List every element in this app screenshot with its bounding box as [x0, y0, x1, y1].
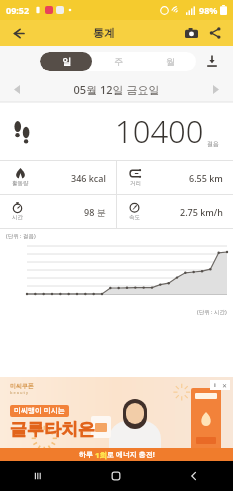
button[interactable]: Camera — [181, 23, 201, 43]
button[interactable]: 활동량 — [0, 161, 116, 194]
button[interactable]: Home — [77, 461, 155, 491]
staticText: 거리 — [130, 180, 141, 187]
staticText: b e a u t y — [10, 390, 29, 395]
staticText: 2.75 km/h — [180, 206, 223, 218]
staticText: 걸음 — [207, 140, 219, 148]
button[interactable]: Next day — [199, 76, 233, 102]
staticText: 미씨쿠폰 — [10, 382, 34, 390]
staticText: 6.55 km — [189, 172, 223, 184]
staticText: (단위 : 시간) — [197, 308, 227, 316]
staticText: 09:52 — [6, 4, 30, 16]
staticText: 통계 — [93, 26, 115, 40]
staticText: 346 kcal — [71, 172, 106, 184]
button[interactable]: Recents — [0, 461, 77, 491]
staticText: 하루 — [79, 450, 95, 460]
staticText: 주 — [114, 56, 123, 67]
button[interactable]: 주 — [92, 52, 144, 71]
button[interactable]: Download — [201, 50, 223, 72]
button[interactable]: Close ad — [220, 380, 230, 390]
staticText: 98% — [199, 4, 218, 16]
staticText: 월 — [166, 56, 175, 67]
staticText: 로 에너지 충전! — [107, 450, 155, 460]
button[interactable]: 월 — [144, 52, 196, 71]
staticText: (단위 : 걸음) — [6, 232, 36, 240]
button[interactable]: Share — [205, 23, 225, 43]
staticText: 1회 — [95, 450, 107, 460]
staticText: 속도 — [129, 214, 140, 221]
staticText: 미씨맹이 미시는 — [14, 406, 65, 416]
staticText: i — [214, 381, 216, 389]
button[interactable]: 시간 — [0, 195, 116, 228]
button[interactable] — [0, 377, 233, 461]
button[interactable]: 속도 — [117, 195, 233, 228]
staticText: 05월 12일 금요일 — [34, 82, 199, 97]
button[interactable]: 거리 — [117, 161, 233, 194]
staticText: 글루타치온 — [10, 419, 95, 440]
button[interactable]: Previous day — [0, 76, 34, 102]
staticText: 98 분 — [84, 206, 106, 218]
staticText: 시간 — [12, 214, 23, 221]
button[interactable]: Ad info — [210, 380, 220, 390]
button[interactable]: 일 — [40, 52, 92, 71]
staticText: 10400 — [115, 110, 204, 152]
button[interactable]: Back — [155, 461, 233, 491]
staticText: 일 — [62, 56, 71, 67]
staticText: 활동량 — [12, 180, 29, 187]
button[interactable]: Back — [8, 23, 28, 43]
staticText: ✕ — [222, 382, 228, 389]
